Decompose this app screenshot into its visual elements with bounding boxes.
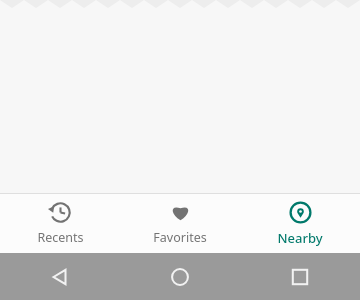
button[interactable]: Favorites	[120, 194, 240, 253]
button[interactable]: Recents	[0, 194, 120, 253]
staticText: Favorites	[153, 229, 207, 246]
button[interactable]: Recent apps	[240, 253, 360, 300]
staticText: Nearby	[277, 229, 323, 247]
button[interactable]: Home	[120, 253, 240, 300]
button[interactable]: Back	[0, 253, 120, 300]
staticText: Recents	[37, 229, 84, 246]
button[interactable]: Nearby	[240, 194, 360, 253]
